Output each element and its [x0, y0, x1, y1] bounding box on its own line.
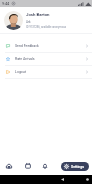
button[interactable]: Back	[16, 175, 92, 184]
button[interactable]: Send Feedback	[0, 40, 92, 52]
button[interactable]: Rate Arrivals	[0, 53, 92, 65]
button[interactable]: Home	[3, 160, 15, 172]
staticText: 9:44	[2, 2, 10, 6]
staticText: ID 9137286, available anonymous	[26, 25, 67, 28]
staticText: Ark	[26, 20, 31, 24]
button[interactable]: Notifications	[39, 160, 51, 172]
button[interactable]: Recents	[65, 175, 92, 184]
staticText: Send Feedback	[15, 44, 39, 48]
button[interactable]: Logout	[0, 66, 92, 78]
button[interactable]: Settings	[61, 162, 89, 171]
button[interactable]: Josh Barton	[0, 7, 92, 33]
staticText: Settings	[71, 165, 85, 169]
button[interactable]: Calendar	[22, 160, 34, 172]
staticText: Logout	[15, 70, 26, 74]
staticText: Josh Barton	[26, 12, 50, 17]
button[interactable]: Home	[41, 175, 92, 184]
staticText: Rate Arrivals	[15, 57, 35, 61]
